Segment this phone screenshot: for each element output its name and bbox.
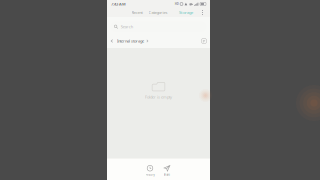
- button[interactable]: Back: [107, 36, 117, 46]
- button[interactable]: Share: [158, 165, 175, 177]
- staticText: Folder is empty: [145, 94, 172, 100]
- staticText: 7:43 AM: [111, 1, 126, 7]
- button[interactable]: Search: [110, 21, 206, 32]
- staticText: Categories: [148, 10, 167, 15]
- button[interactable]: Categories: [147, 8, 169, 17]
- staticText: Recent: [131, 10, 142, 15]
- button[interactable]: Storage: [177, 8, 195, 17]
- staticText: Search: [121, 24, 133, 29]
- staticText: Share: [163, 173, 170, 176]
- staticText: Storage: [179, 10, 193, 15]
- button[interactable]: Sort and view options: [198, 36, 210, 46]
- staticText: Internal storage: [117, 38, 144, 44]
- button[interactable]: Recent: [129, 8, 145, 17]
- staticText: HD: [175, 2, 179, 6]
- staticText: History: [145, 173, 154, 176]
- button[interactable]: More options: [198, 8, 207, 17]
- button[interactable]: History: [141, 165, 158, 177]
